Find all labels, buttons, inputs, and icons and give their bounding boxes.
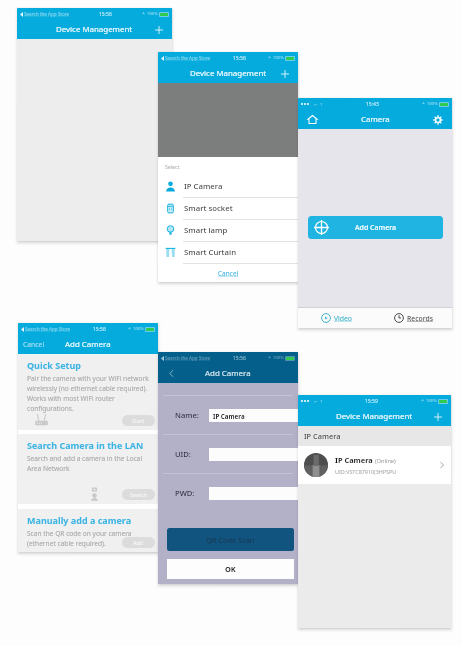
other: Add device xyxy=(155,26,163,34)
other: Home xyxy=(307,114,318,125)
button[interactable]: IP Camera xyxy=(158,176,298,198)
staticText: Name: xyxy=(175,410,201,420)
staticText: OK xyxy=(225,564,236,574)
button[interactable]: Back xyxy=(158,364,185,383)
staticText: QR Code Scan xyxy=(206,535,255,545)
staticText: IP Camera xyxy=(213,412,245,420)
other: Back xyxy=(167,369,176,378)
staticText: IP Camera xyxy=(304,431,341,441)
button[interactable]: Add device xyxy=(272,64,298,83)
staticText: Smart Curtain xyxy=(184,247,237,258)
staticText: 100% xyxy=(133,326,144,332)
staticText: Add xyxy=(133,539,144,546)
staticText: UID: xyxy=(175,449,201,459)
staticText: Cancel xyxy=(218,269,239,278)
staticText: Search the App Store xyxy=(165,55,211,61)
button[interactable]: Cancel xyxy=(18,335,50,354)
button[interactable]: Add device xyxy=(146,20,172,39)
button[interactable]: Search xyxy=(122,489,155,500)
staticText: Smart lamp xyxy=(184,225,228,236)
button[interactable]: Smart lamp xyxy=(158,220,298,242)
staticText: Start xyxy=(132,417,145,424)
staticText: Device Management xyxy=(56,24,133,35)
button[interactable]: Add Camera xyxy=(308,216,443,239)
staticText: Records xyxy=(407,314,433,323)
staticText: Search the App Store xyxy=(24,11,70,17)
staticText: 15:56 xyxy=(93,326,106,333)
staticText: IP Camera xyxy=(184,181,223,192)
staticText: Manually add a camera xyxy=(27,514,132,526)
staticText: Cancel xyxy=(23,340,45,349)
other: Add device xyxy=(434,413,442,421)
button[interactable]: IP Camera xyxy=(298,446,451,484)
button[interactable]: Add device xyxy=(425,407,451,426)
staticText: (Online) xyxy=(375,457,396,465)
staticText: ← ↑ xyxy=(314,102,323,107)
staticText: 100% xyxy=(273,355,284,361)
staticText: IP Camera xyxy=(335,455,373,465)
staticText: Video xyxy=(334,314,352,323)
staticText: PWD: xyxy=(175,488,201,498)
button[interactable]: Settings xyxy=(424,110,452,129)
button[interactable]: Start xyxy=(122,415,155,426)
staticText: ← ↑ xyxy=(314,399,323,404)
staticText: 100% xyxy=(426,398,437,404)
staticText: 15:56 xyxy=(99,11,112,18)
button[interactable]: Records xyxy=(375,308,452,328)
staticText: Search the App Store xyxy=(25,326,71,332)
button[interactable]: Home xyxy=(298,110,327,129)
staticText: UID:VSTC87910(3HPSPU xyxy=(335,468,397,475)
staticText: Search and add a camera in the Local Are… xyxy=(27,454,156,472)
staticText: Smart socket xyxy=(184,203,233,214)
staticText: Add Camera xyxy=(65,339,111,350)
button[interactable]: Video xyxy=(298,308,375,328)
staticText: Scan the QR code on your camera (etherne… xyxy=(27,529,156,547)
other: Add device xyxy=(281,70,289,78)
button[interactable]: OK xyxy=(167,559,294,579)
staticText: Search xyxy=(130,491,148,498)
staticText: Pair the camera with your WiFi network w… xyxy=(27,374,156,412)
staticText: Search the App Store xyxy=(165,355,211,361)
staticText: Select xyxy=(165,163,180,170)
staticText: Add Camera xyxy=(355,223,397,233)
other: Settings xyxy=(433,115,443,125)
staticText: 15:56 xyxy=(233,355,246,362)
button[interactable]: Add xyxy=(122,537,155,548)
staticText: 15:43 xyxy=(366,101,379,108)
staticText: 100% xyxy=(273,55,284,61)
button[interactable]: Smart Curtain xyxy=(158,242,298,264)
staticText: 100% xyxy=(147,11,158,17)
staticText: 15:59 xyxy=(365,398,378,405)
staticText: Quick Setup xyxy=(27,359,82,371)
button[interactable]: Smart socket xyxy=(158,198,298,220)
staticText: 15:56 xyxy=(233,55,246,62)
staticText: Add Camera xyxy=(205,368,251,379)
staticText: Device Management xyxy=(190,68,267,79)
button[interactable]: QR Code Scan xyxy=(167,528,294,551)
button[interactable]: Cancel xyxy=(158,264,298,282)
staticText: Device Management xyxy=(336,411,413,422)
staticText: 100% xyxy=(427,101,438,107)
staticText: Camera xyxy=(361,114,390,125)
staticText: Search Camera in the LAN xyxy=(27,439,144,451)
